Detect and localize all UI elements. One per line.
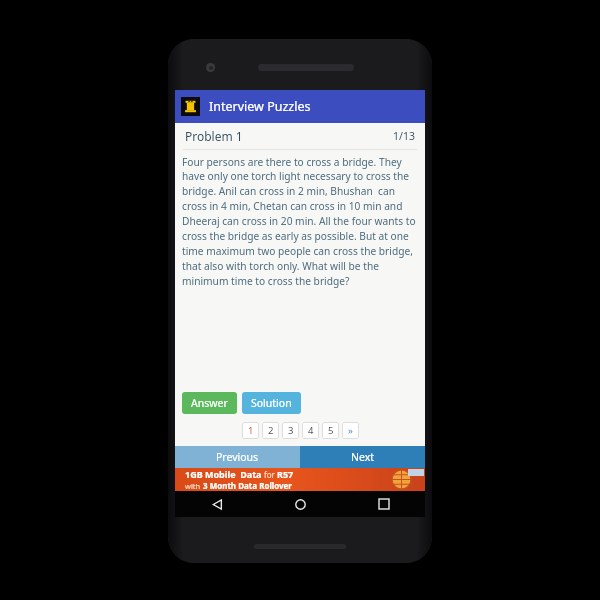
- staticText: for: [264, 469, 277, 480]
- button[interactable]: »: [342, 422, 359, 439]
- button[interactable]: Next: [300, 446, 425, 468]
- button[interactable]: Solution: [242, 392, 301, 414]
- staticText: 4: [308, 424, 314, 437]
- staticText: 5: [328, 424, 334, 437]
- staticText: Answer: [191, 396, 228, 410]
- staticText: Interview Puzzles: [209, 98, 311, 115]
- staticText: Previous: [216, 450, 259, 464]
- staticText: Mobile Data: [205, 468, 264, 480]
- button[interactable]: Back: [175, 491, 259, 517]
- staticText: 1/13: [393, 129, 415, 143]
- staticText: with: [185, 481, 203, 491]
- button[interactable]: 1GB: [175, 468, 425, 491]
- button[interactable]: 5: [322, 422, 339, 439]
- button[interactable]: Home: [259, 491, 342, 517]
- button[interactable]: 4: [302, 422, 319, 439]
- staticText: R57: [277, 468, 294, 480]
- staticText: 3: [288, 424, 294, 437]
- staticText: Problem 1: [185, 128, 243, 144]
- staticText: 2: [268, 424, 274, 437]
- staticText: Four persons are there to cross a bridge…: [182, 155, 418, 288]
- button[interactable]: Recent apps: [342, 491, 425, 517]
- staticText: Next: [351, 450, 375, 464]
- button[interactable]: Answer: [182, 392, 237, 414]
- button[interactable]: Previous: [175, 446, 300, 468]
- button[interactable]: 1: [242, 422, 259, 439]
- staticText: 1: [248, 424, 254, 437]
- staticText: 3 Month Data Rollover: [203, 480, 292, 491]
- staticText: 1GB: [185, 468, 205, 480]
- button[interactable]: 3: [282, 422, 299, 439]
- staticText: »: [348, 424, 353, 437]
- button[interactable]: 2: [262, 422, 279, 439]
- staticText: Solution: [251, 396, 292, 410]
